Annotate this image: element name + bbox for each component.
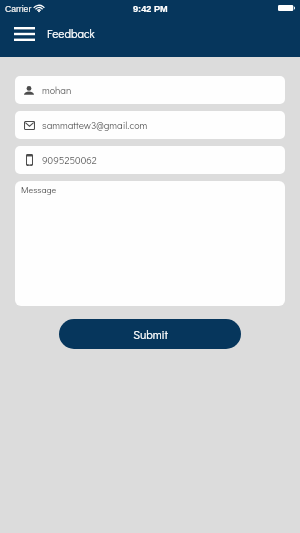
staticText: mohan	[42, 84, 72, 97]
staticText: Carrier	[5, 4, 32, 14]
staticText: 9095250062	[42, 154, 97, 167]
staticText: Submit	[133, 327, 168, 342]
button[interactable]: Open navigation menu	[10, 20, 38, 48]
staticText: Feedback	[47, 26, 95, 41]
button[interactable]: mohan	[15, 76, 285, 104]
button[interactable]: Submit	[59, 319, 241, 349]
staticText: Message	[21, 184, 57, 196]
staticText: 9:42 PM	[133, 4, 168, 14]
button[interactable]: sammattew3@gmail.com	[15, 111, 285, 139]
button[interactable]: Message	[15, 181, 285, 306]
staticText: sammattew3@gmail.com	[42, 119, 148, 132]
button[interactable]: 9095250062	[15, 146, 285, 174]
